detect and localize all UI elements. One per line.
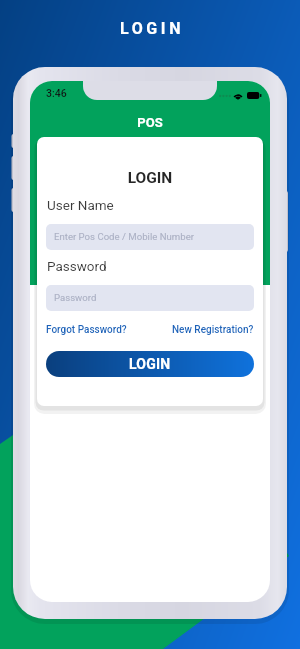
- staticText: Password: [47, 258, 107, 274]
- staticText: Password: [54, 292, 97, 303]
- staticText: LOGIN: [37, 169, 263, 187]
- staticText: LOGIN: [2, 19, 300, 38]
- other: Battery: [247, 92, 261, 99]
- staticText: 3:46: [46, 87, 67, 99]
- button[interactable]: LOGIN: [46, 351, 254, 377]
- staticText: POS: [30, 115, 270, 130]
- staticText: Enter Pos Code / Mobile Number: [54, 231, 194, 242]
- other: Wi-Fi: [233, 92, 243, 100]
- button[interactable]: New Registration?: [172, 324, 254, 336]
- button[interactable]: Password: [46, 285, 254, 311]
- button[interactable]: Forgot Password?: [46, 324, 127, 336]
- other: Signal strength: [219, 94, 230, 98]
- button[interactable]: Enter Pos Code / Mobile Number: [46, 224, 254, 250]
- staticText: User Name: [47, 197, 114, 213]
- staticText: LOGIN: [129, 356, 171, 372]
